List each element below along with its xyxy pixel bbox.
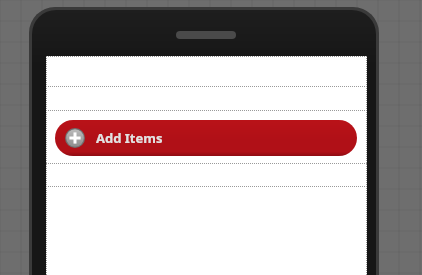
other: Add bbox=[65, 128, 85, 148]
button[interactable]: Add bbox=[55, 120, 357, 156]
staticText: Add Items bbox=[96, 129, 163, 147]
